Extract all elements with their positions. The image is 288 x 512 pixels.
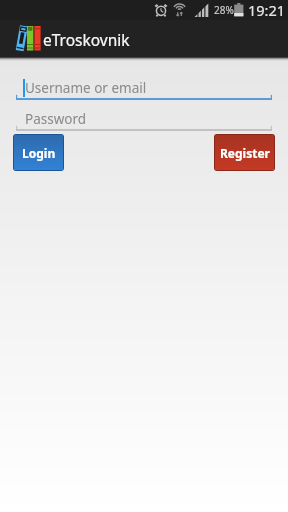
button[interactable]: Register [215,135,274,170]
staticText: 28% [214,3,234,17]
button[interactable]: eTroskovnik home [14,24,44,54]
staticText: eTroskovnik [43,29,130,50]
staticText: Password [25,110,87,128]
staticText: 19:21 [248,0,286,20]
button[interactable]: Username or email [16,77,272,100]
button[interactable]: Password [16,108,272,131]
staticText: Register [220,145,270,161]
staticText: Login [22,145,56,161]
button[interactable]: Login [14,135,63,170]
staticText: Username or email [25,79,147,97]
